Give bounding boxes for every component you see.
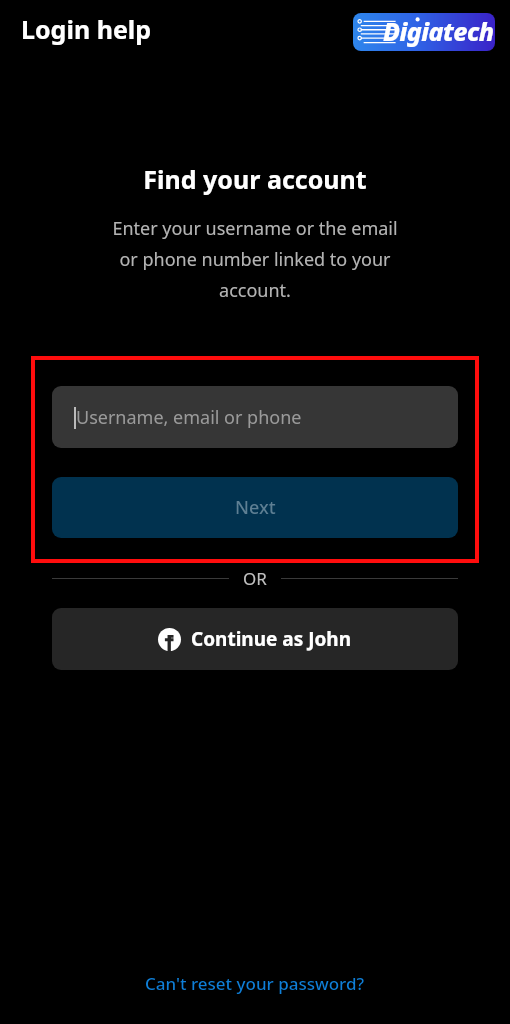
staticText: Next [235,495,276,520]
button[interactable]: Next [52,477,458,538]
button[interactable]: Can't reset your password? [133,966,377,1001]
staticText: Login help [21,12,152,46]
staticText: Digiatech [383,14,494,48]
button[interactable]: Username, email or phone [52,386,458,448]
button[interactable]: Continue as John [52,608,458,670]
staticText: OR [243,567,267,590]
other: Digiatech [353,13,495,51]
staticText: Find your account [143,162,367,196]
staticText: Enter your username or the email or phon… [105,216,405,303]
staticText: Username, email or phone [76,405,302,430]
staticText: Continue as John [191,626,352,652]
staticText: Can't reset your password? [145,972,365,995]
